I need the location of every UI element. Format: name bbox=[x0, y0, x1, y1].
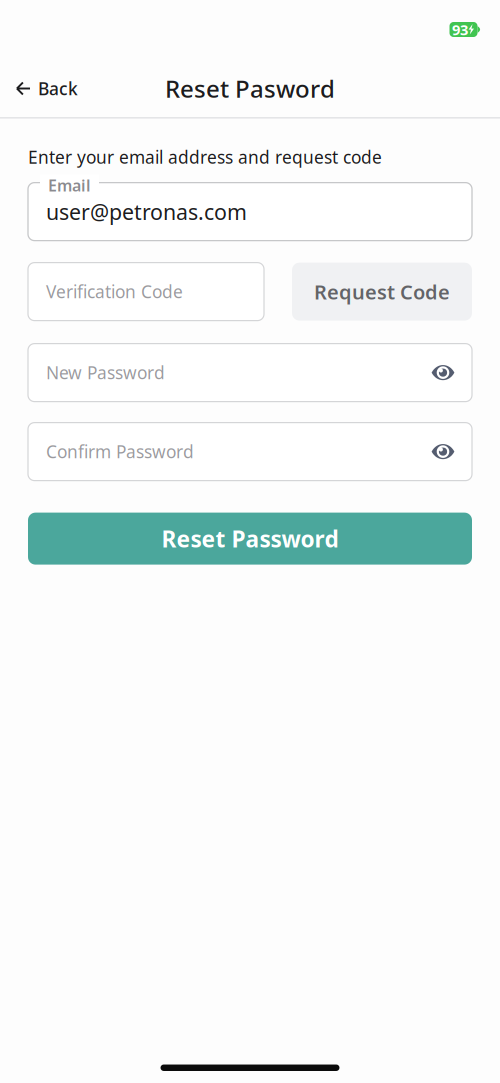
button[interactable]: Back bbox=[0, 66, 94, 110]
staticText: Confirm Password bbox=[46, 440, 194, 463]
staticText: Reset Password bbox=[161, 524, 338, 554]
staticText: New Password bbox=[46, 361, 165, 384]
staticText: 93 bbox=[452, 20, 468, 39]
staticText: Reset Pasword bbox=[165, 73, 335, 104]
button[interactable]: Reset Password bbox=[28, 513, 472, 565]
staticText: Verification Code bbox=[46, 280, 183, 303]
staticText: Back bbox=[38, 77, 78, 100]
button[interactable]: Request Code bbox=[292, 263, 472, 321]
staticText: Email bbox=[48, 175, 91, 196]
staticText: Enter your email address and request cod… bbox=[28, 146, 382, 169]
staticText: Request Code bbox=[314, 278, 450, 305]
staticText: user@petronas.com bbox=[46, 197, 247, 226]
